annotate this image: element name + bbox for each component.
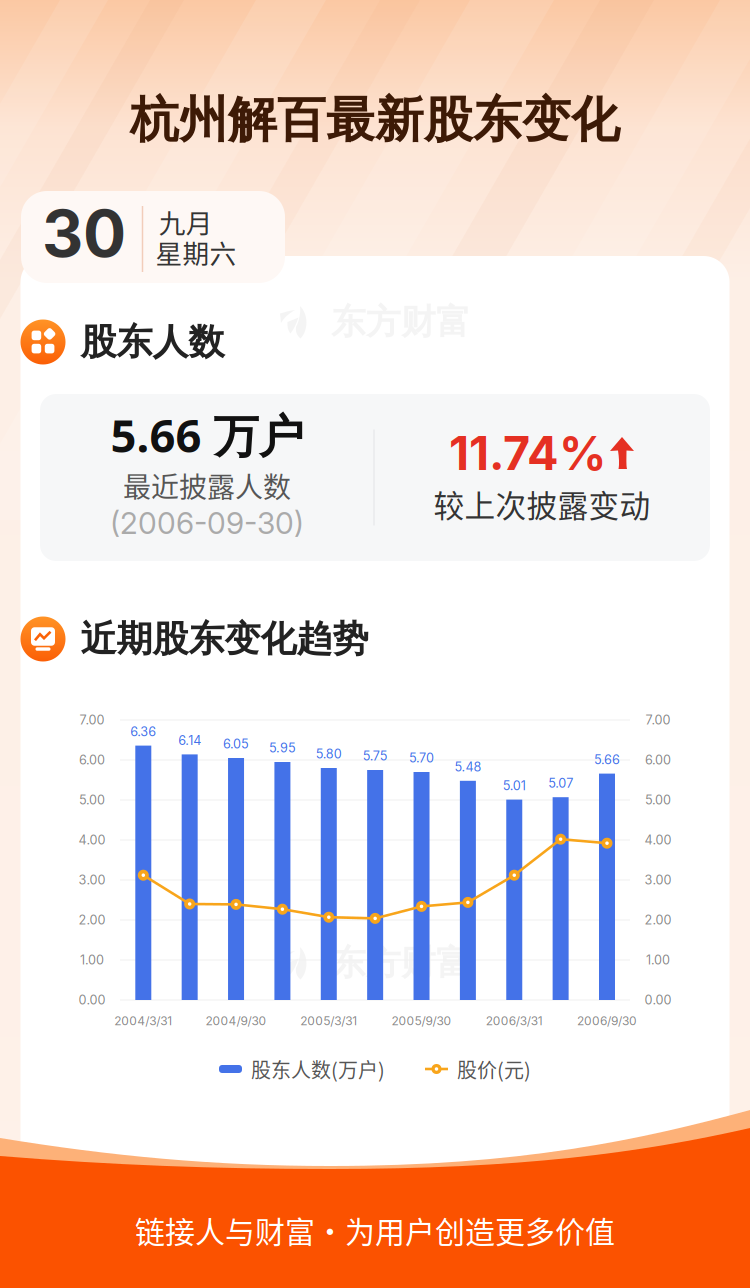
staticText: 30 xyxy=(42,195,126,272)
staticText: 2006/9/30 xyxy=(577,1014,637,1028)
staticText: 6.05 xyxy=(223,736,249,752)
staticText: 星期六 xyxy=(155,233,236,271)
staticText: 股东人数(万户) xyxy=(251,1054,385,1083)
staticText: 5.70 xyxy=(409,750,434,766)
staticText: 2004/9/30 xyxy=(205,1014,266,1028)
staticText: 5.00 xyxy=(645,792,671,808)
staticText: 5.80 xyxy=(316,746,342,762)
staticText: 5.00 xyxy=(79,792,105,808)
staticText: 股价(元) xyxy=(457,1054,531,1083)
staticText: 近期股东变化趋势 xyxy=(80,616,368,662)
staticText: 5.66 万户 xyxy=(110,404,303,466)
staticText: 3.00 xyxy=(644,872,671,888)
staticText: 3.00 xyxy=(78,872,105,888)
staticText: 1.00 xyxy=(80,952,104,968)
staticText: 6.14 xyxy=(178,733,201,748)
staticText: 7.00 xyxy=(79,712,104,728)
staticText: 7.00 xyxy=(645,712,670,728)
staticText: 6.36 xyxy=(130,724,156,739)
staticText: 2.00 xyxy=(644,912,671,928)
staticText: 2005/3/31 xyxy=(300,1014,357,1028)
staticText: 股东人数 xyxy=(80,319,224,365)
staticText: 2004/3/31 xyxy=(114,1014,172,1028)
staticText: 东方财富 xyxy=(331,300,471,344)
staticText: 4.00 xyxy=(644,832,671,848)
staticText: 5.66 xyxy=(594,752,620,767)
staticText: 链接人与财富·为用户创造更多价值 xyxy=(135,1208,615,1252)
staticText: 东方财富 xyxy=(331,941,471,985)
staticText: 5.01 xyxy=(503,778,526,793)
staticText: 较上次披露变动 xyxy=(433,482,650,526)
staticText: 最近披露人数 xyxy=(123,465,291,506)
staticText: 0.00 xyxy=(644,992,671,1008)
staticText: 2005/9/30 xyxy=(391,1014,451,1028)
staticText: 6.00 xyxy=(79,752,105,768)
staticText: 6.00 xyxy=(645,752,671,768)
staticText: 0.00 xyxy=(78,992,105,1008)
staticText: 11.74% xyxy=(449,425,606,481)
staticText: 2006/3/31 xyxy=(486,1014,543,1028)
staticText: (2006-09-30) xyxy=(110,505,304,541)
staticText: 杭州解百最新股东变化 xyxy=(130,89,620,151)
staticText: 1.00 xyxy=(646,952,670,968)
staticText: 5.07 xyxy=(548,775,573,791)
staticText: 5.48 xyxy=(454,759,481,774)
staticText: 5.75 xyxy=(363,748,388,764)
staticText: 九月 xyxy=(159,202,213,241)
staticText: 4.00 xyxy=(78,832,105,848)
staticText: 2.00 xyxy=(78,912,105,928)
staticText: 5.95 xyxy=(269,740,296,756)
